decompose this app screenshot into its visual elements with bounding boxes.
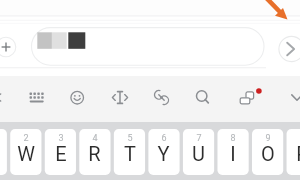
- button[interactable]: 4: [79, 129, 110, 175]
- button[interactable]: 2: [10, 129, 41, 175]
- staticText: E: [55, 142, 67, 165]
- button[interactable]: Message input: [32, 28, 263, 65]
- button[interactable]: Add attachment: [0, 34, 19, 58]
- button[interactable]: 1: [0, 129, 7, 175]
- button[interactable]: Keyboard: [21, 82, 53, 114]
- button[interactable]: 6: [148, 129, 179, 175]
- button[interactable]: 7: [183, 129, 214, 175]
- staticText: P: [296, 142, 300, 165]
- button[interactable]: Search: [187, 82, 219, 114]
- staticText: T: [124, 142, 136, 165]
- staticText: R: [88, 142, 101, 165]
- staticText: O: [261, 142, 275, 165]
- staticText: 6: [161, 133, 167, 144]
- button[interactable]: 8: [217, 129, 248, 175]
- button[interactable]: Text formatting: [104, 82, 136, 114]
- button[interactable]: 3: [45, 129, 76, 175]
- staticText: Y: [157, 142, 170, 165]
- staticText: 5: [127, 133, 133, 144]
- staticText: W: [17, 142, 35, 165]
- button[interactable]: Send: [279, 35, 300, 61]
- button[interactable]: More options: [281, 82, 300, 114]
- staticText: 3: [58, 133, 64, 144]
- button[interactable]: Expand keyboard: [0, 82, 12, 114]
- staticText: U: [192, 142, 205, 165]
- button[interactable]: 5: [114, 129, 145, 175]
- staticText: 2: [23, 133, 29, 144]
- button[interactable]: Link: [146, 82, 178, 114]
- button[interactable]: 0: [287, 129, 300, 175]
- button[interactable]: Stickers: [231, 82, 263, 114]
- button[interactable]: Emoji: [62, 82, 94, 114]
- staticText: 7: [196, 133, 202, 144]
- staticText: 4: [92, 133, 98, 144]
- button[interactable]: 9: [252, 129, 283, 175]
- staticText: 8: [230, 133, 236, 144]
- staticText: 9: [265, 133, 271, 144]
- staticText: I: [230, 142, 236, 165]
